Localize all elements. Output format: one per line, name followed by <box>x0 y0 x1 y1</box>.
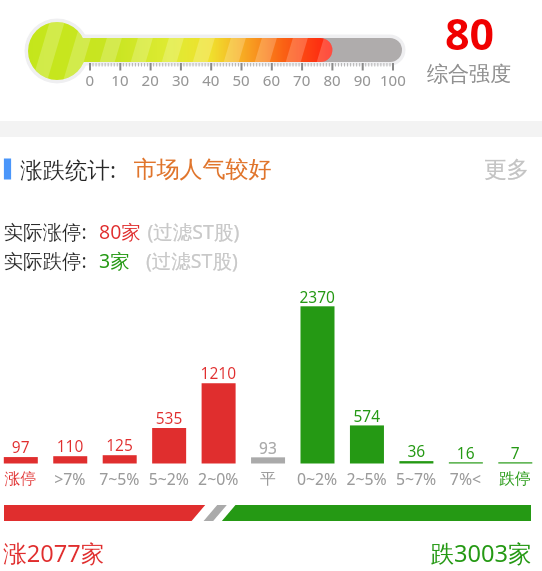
button[interactable] <box>0 0 542 571</box>
